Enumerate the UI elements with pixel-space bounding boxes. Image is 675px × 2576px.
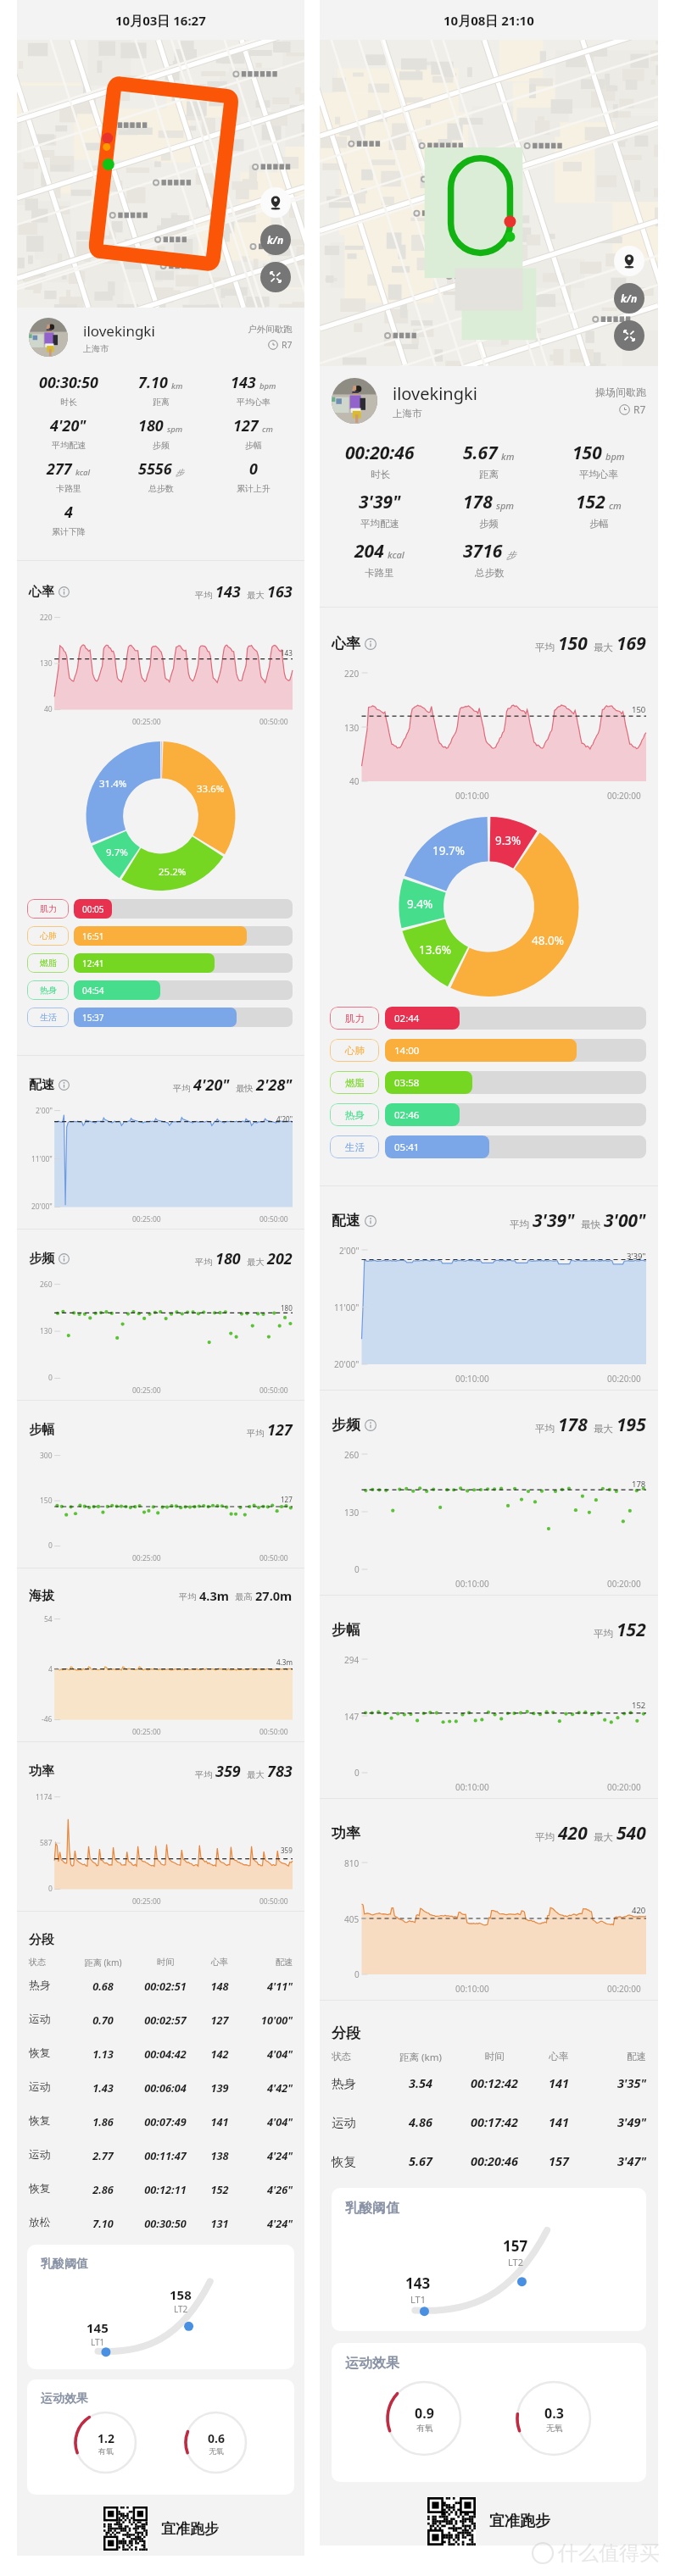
staticText: 心率 xyxy=(533,2051,585,2063)
button[interactable]: 乳酸阈值 xyxy=(27,2245,294,2369)
staticText: ilovekingki xyxy=(393,382,477,405)
staticText: 0 xyxy=(354,1767,360,1779)
staticText: 48.0% xyxy=(532,933,565,948)
button[interactable]: 热身 xyxy=(330,1103,646,1126)
staticText: 152 xyxy=(198,2182,242,2196)
staticText: 127 xyxy=(233,415,259,436)
button[interactable]: 恢复 xyxy=(29,2172,293,2206)
staticText: 00:12:11 xyxy=(133,2182,198,2196)
staticText: 130 xyxy=(344,722,360,734)
staticText: 乳酸阈值 xyxy=(41,2257,88,2272)
staticText: 00:50:00 xyxy=(259,1727,288,1737)
staticText: 步频 xyxy=(479,518,499,530)
staticText: 0 xyxy=(48,1541,53,1551)
staticText: 14:00 xyxy=(394,1044,420,1058)
button[interactable]: 运动效果 xyxy=(332,2343,646,2482)
button[interactable]: 放松 xyxy=(29,2206,293,2240)
staticText: 1.86 xyxy=(73,2114,133,2129)
staticText: 平均 xyxy=(535,641,555,654)
button[interactable]: 肌力 xyxy=(27,899,293,919)
staticText: 功率 xyxy=(332,1824,360,1842)
staticText: 0.3 xyxy=(544,2404,564,2423)
staticText: 05:41 xyxy=(394,1141,420,1154)
staticText: 00:10:00 xyxy=(455,1781,489,1793)
staticText: 平均 xyxy=(535,1423,555,1435)
staticText: 00:20:46 xyxy=(456,2153,533,2170)
staticText: 00:30:50 xyxy=(39,372,98,393)
button[interactable]: 燃脂 xyxy=(27,953,293,973)
staticText: LT2 xyxy=(508,2256,523,2268)
staticText: 3716 xyxy=(463,539,503,563)
staticText: 0 xyxy=(354,1968,360,1980)
button[interactable]: Fullscreen map xyxy=(260,262,291,292)
staticText: 心率 xyxy=(332,635,360,652)
staticText: 195 xyxy=(616,1413,646,1437)
staticText: 状态 xyxy=(332,2051,385,2063)
staticText: 热身 xyxy=(345,1109,365,1121)
button[interactable]: 乳酸阈值 xyxy=(332,2188,646,2331)
button[interactable]: 肌力 xyxy=(330,1007,646,1030)
button[interactable]: 运动 xyxy=(332,2103,646,2142)
staticText: 0.9 xyxy=(415,2404,434,2423)
staticText: 热身 xyxy=(40,985,57,996)
staticText: 最大 xyxy=(247,590,265,601)
button[interactable]: Locate me xyxy=(614,246,644,276)
staticText: 5.67 xyxy=(385,2153,456,2170)
staticText: 宜准跑步 xyxy=(161,2520,219,2538)
button[interactable]: 运动 xyxy=(29,2070,293,2104)
staticText: 180 xyxy=(215,1248,241,1269)
staticText: 277 xyxy=(47,458,72,480)
staticText: 152 xyxy=(576,490,605,514)
button[interactable]: 燃脂 xyxy=(330,1071,646,1094)
staticText: kcal xyxy=(388,548,404,561)
staticText: 143 xyxy=(405,2273,431,2293)
staticText: 127 xyxy=(198,2012,242,2027)
staticText: 00:10:00 xyxy=(455,1983,489,1995)
staticText: 心率 xyxy=(29,584,54,600)
button[interactable]: 运动效果 xyxy=(27,2379,294,2495)
staticText: k/n xyxy=(621,291,638,305)
button[interactable]: 热身 xyxy=(27,980,293,1000)
staticText: 00:50:00 xyxy=(259,717,288,727)
staticText: 燃脂 xyxy=(345,1077,365,1089)
button[interactable]: 热身 xyxy=(332,2064,646,2103)
button[interactable]: 心肺 xyxy=(27,926,293,946)
staticText: LT1 xyxy=(91,2336,105,2348)
staticText: 141 xyxy=(198,2114,242,2129)
staticText: 359 xyxy=(281,1846,293,1855)
button[interactable]: 生活 xyxy=(27,1008,293,1027)
button[interactable]: Fullscreen map xyxy=(614,320,644,351)
button[interactable]: Locate me xyxy=(260,187,291,218)
staticText: 4'20" xyxy=(276,1114,293,1124)
staticText: 平均 xyxy=(510,1219,530,1231)
button[interactable]: Toggle units xyxy=(614,283,644,314)
button[interactable]: 恢复 xyxy=(29,2036,293,2070)
staticText: 4.3m xyxy=(199,1587,229,1604)
staticText: 放松 xyxy=(29,2216,73,2229)
button[interactable]: 恢复 xyxy=(29,2104,293,2138)
button[interactable]: 恢复 xyxy=(332,2142,646,2181)
button[interactable]: 生活 xyxy=(330,1135,646,1158)
staticText: 3'00" xyxy=(604,1208,646,1233)
staticText: 10月08日 21:10 xyxy=(443,12,534,29)
staticText: 00:04:42 xyxy=(133,2046,198,2061)
staticText: 00:20:46 xyxy=(345,441,415,465)
button[interactable]: 热身 xyxy=(29,1968,293,2002)
staticText: 2.77 xyxy=(73,2148,133,2162)
button[interactable]: 运动 xyxy=(29,2002,293,2036)
button[interactable]: Toggle units xyxy=(260,225,291,255)
staticText: 最大 xyxy=(247,1769,265,1780)
staticText: 1.13 xyxy=(73,2046,133,2061)
staticText: 4'04" xyxy=(242,2114,293,2129)
staticText: 宜准跑步 xyxy=(489,2512,550,2531)
staticText: 平均 xyxy=(535,1831,555,1844)
staticText: 4 xyxy=(64,502,73,523)
staticText: 143 xyxy=(231,372,256,393)
button[interactable]: 心肺 xyxy=(330,1039,646,1062)
staticText: 00:12:42 xyxy=(456,2075,533,2092)
staticText: 54 xyxy=(44,1614,53,1624)
button[interactable]: 运动 xyxy=(29,2138,293,2172)
staticText: 00:50:00 xyxy=(259,1896,288,1907)
staticText: 9.4% xyxy=(407,897,433,912)
staticText: 3'47" xyxy=(585,2153,646,2170)
